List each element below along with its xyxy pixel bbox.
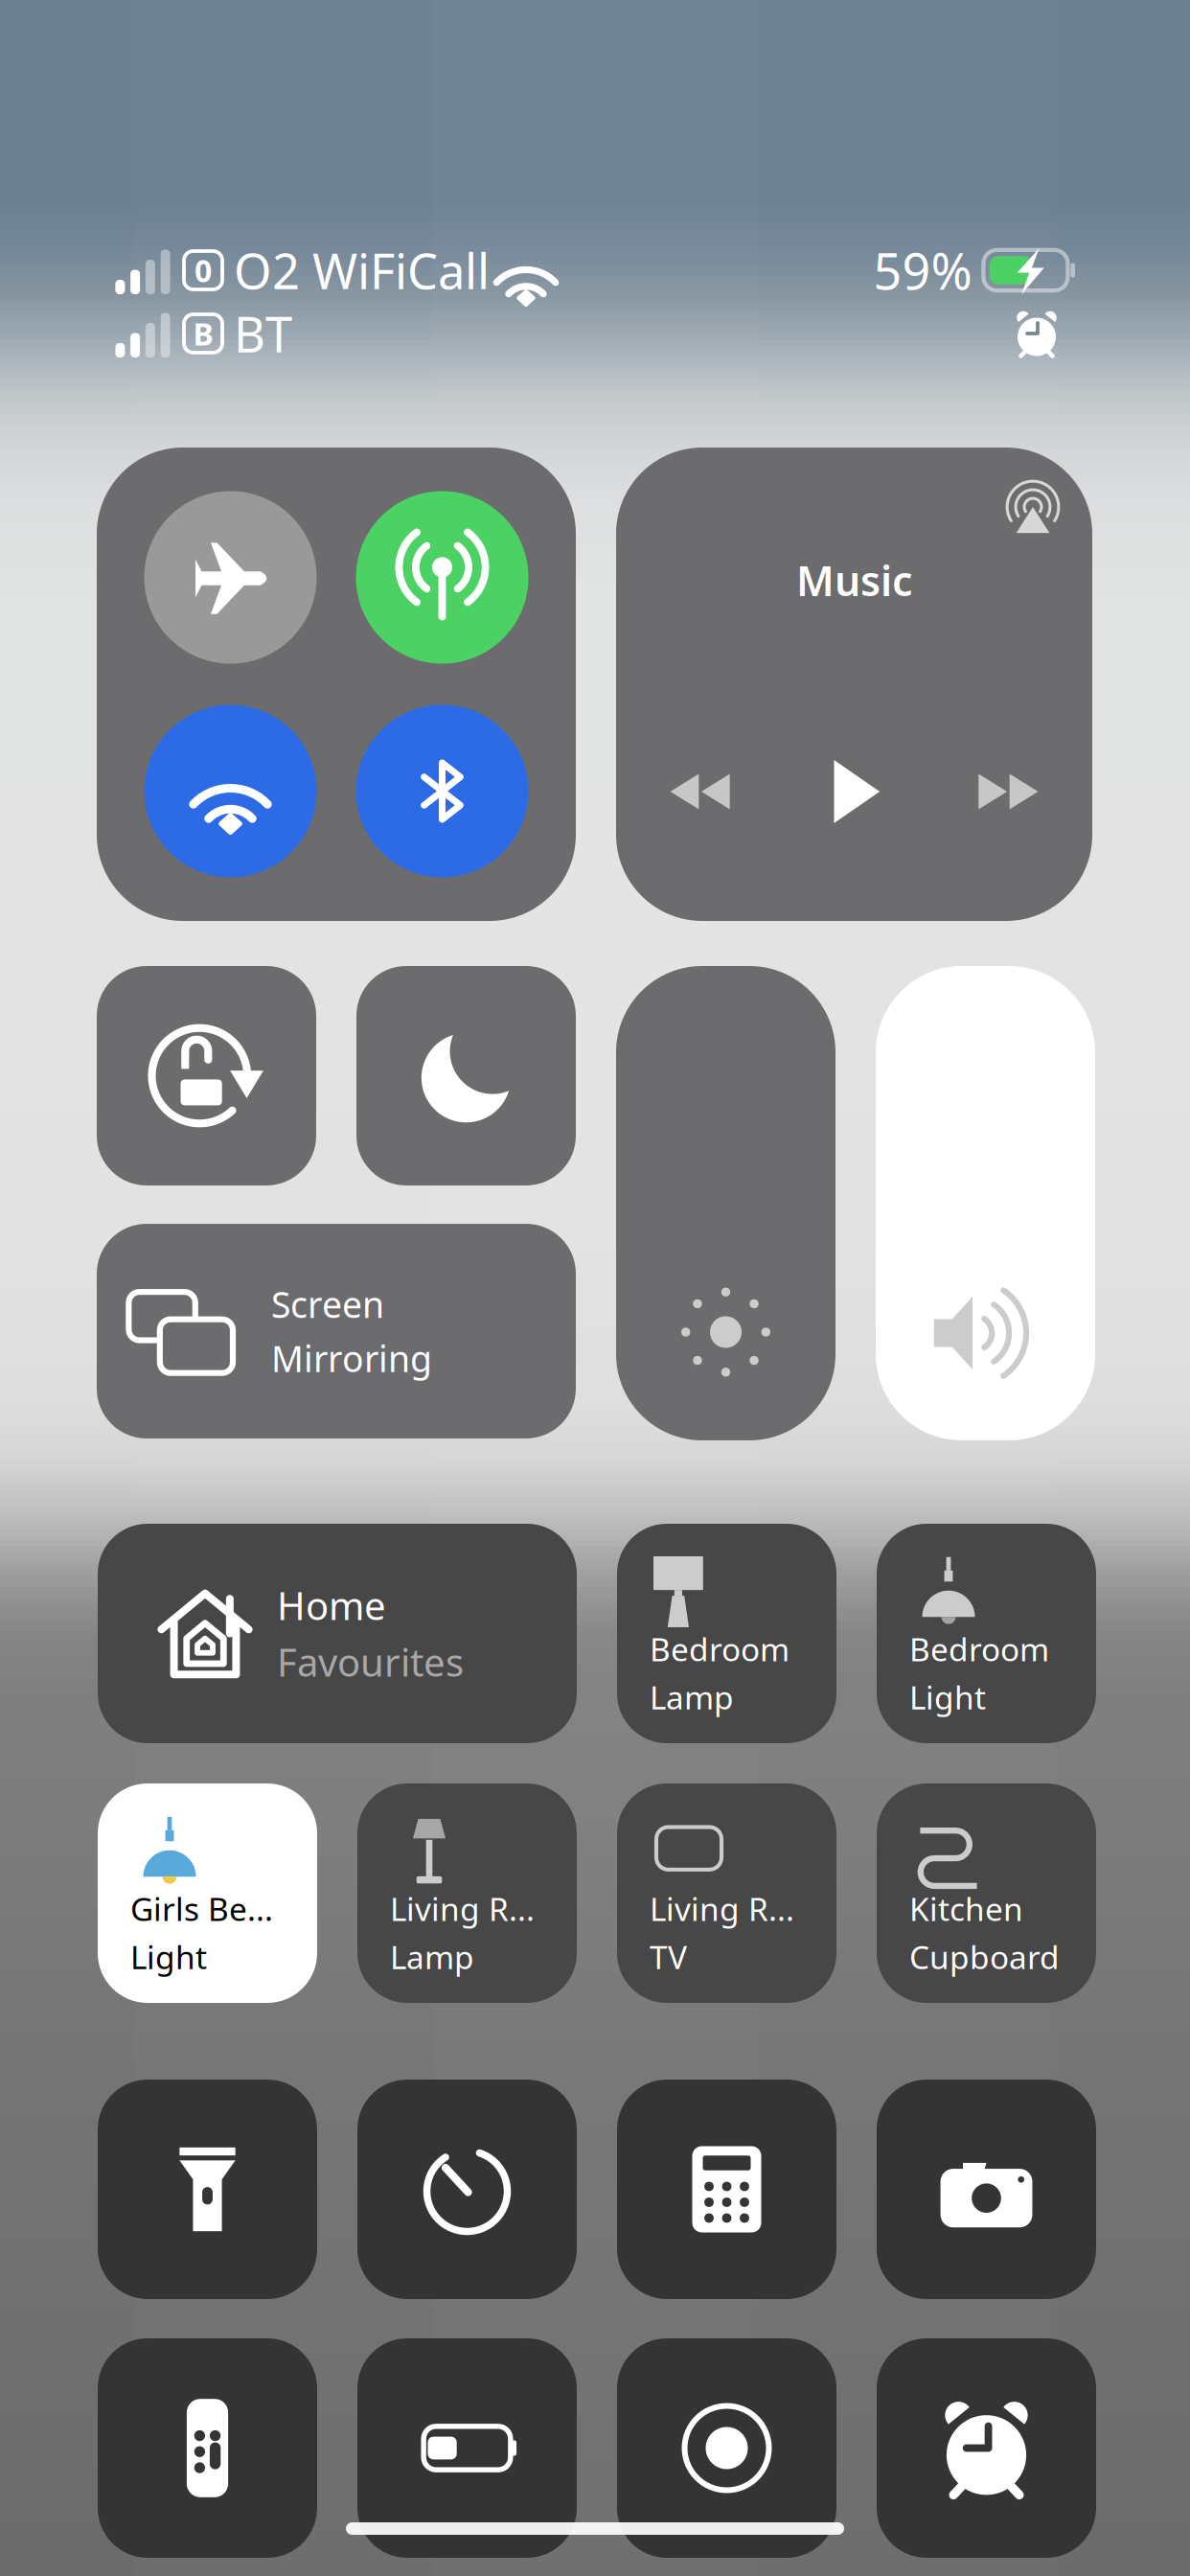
button[interactable]: Calculator: [617, 2080, 836, 2299]
staticText: Mirroring: [271, 1334, 432, 1382]
button[interactable]: Cellular Data: [356, 491, 528, 664]
staticText: Lamp: [650, 1676, 734, 1718]
button[interactable]: Volume: [876, 966, 1095, 1440]
staticText: Light: [909, 1676, 986, 1718]
button[interactable]: Bedroom: [617, 1524, 836, 1743]
button[interactable]: Wi-Fi: [144, 705, 317, 877]
button[interactable]: Display Brightness: [616, 966, 835, 1440]
button[interactable]: Airplane Mode: [144, 491, 317, 664]
button[interactable]: Apple TV Remote: [98, 2338, 317, 2558]
button[interactable]: Screen: [97, 1224, 576, 1438]
staticText: Light: [130, 1936, 207, 1978]
button[interactable]: Previous Track: [668, 760, 731, 823]
button[interactable]: Home: [98, 1524, 577, 1743]
staticText: Cupboard: [909, 1936, 1060, 1978]
button[interactable]: Low Power Mode: [357, 2338, 577, 2558]
staticText: Bedroom: [909, 1628, 1049, 1670]
button[interactable]: Kitchen: [877, 1783, 1096, 2003]
button[interactable]: Portrait Orientation Lock: [97, 966, 316, 1185]
button[interactable]: Bedroom: [877, 1524, 1096, 1743]
button[interactable]: Bluetooth: [356, 705, 528, 877]
button[interactable]: Do Not Disturb: [356, 966, 576, 1185]
button[interactable]: Flashlight: [98, 2080, 317, 2299]
staticText: Living R...: [650, 1887, 794, 1930]
staticText: Kitchen: [909, 1887, 1023, 1930]
staticText: Living R...: [390, 1887, 535, 1930]
staticText: BT: [234, 301, 292, 366]
staticText: Screen: [271, 1280, 384, 1328]
staticText: 59%: [873, 237, 972, 303]
button[interactable]: Camera: [877, 2080, 1096, 2299]
staticText: Favourites: [277, 1636, 464, 1687]
staticText: Girls Be...: [130, 1887, 273, 1930]
staticText: O2 WiFiCall: [234, 238, 490, 303]
button[interactable]: Screen Recording: [617, 2338, 836, 2558]
button[interactable]: Living R...: [617, 1783, 836, 2003]
staticText: Music: [796, 553, 912, 607]
button[interactable]: Alarm: [877, 2338, 1096, 2558]
staticText: Home: [277, 1580, 386, 1631]
button[interactable]: Play: [821, 758, 888, 825]
button[interactable]: Living R...: [357, 1783, 577, 2003]
staticText: TV: [650, 1936, 687, 1978]
button[interactable]: AirPlay: [1006, 480, 1060, 534]
button[interactable]: Next Track: [977, 760, 1041, 823]
button[interactable]: Timer: [357, 2080, 577, 2299]
staticText: B: [193, 313, 213, 354]
staticText: Lamp: [390, 1936, 474, 1978]
button[interactable]: Girls Be...: [98, 1783, 317, 2003]
staticText: Bedroom: [650, 1628, 790, 1670]
staticText: 0: [195, 250, 212, 291]
